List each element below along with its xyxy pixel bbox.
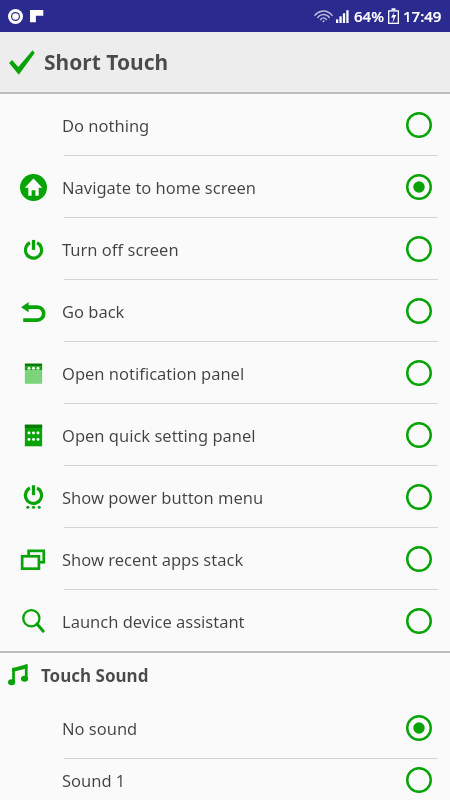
button[interactable]: Show power button menu [0, 466, 450, 527]
staticText: Show recent apps stack [62, 548, 406, 570]
button[interactable]: Open quick setting panel [0, 404, 450, 465]
button[interactable]: No sound [0, 697, 450, 758]
staticText: Open notification panel [62, 362, 406, 384]
staticText: Turn off screen [62, 238, 406, 260]
other: App status [8, 9, 23, 24]
staticText: Go back [62, 300, 406, 322]
staticText: Navigate to home screen [62, 176, 406, 198]
button[interactable]: Navigate to home screen [0, 156, 450, 217]
button[interactable]: Show recent apps stack [0, 528, 450, 589]
button[interactable]: Turn off screen [0, 218, 450, 279]
button[interactable]: Do nothing [0, 94, 450, 155]
staticText: 17:49 [403, 6, 442, 26]
staticText: Do nothing [62, 114, 406, 136]
staticText: Touch Sound [41, 664, 149, 687]
staticText: Short Touch [44, 48, 169, 77]
staticText: Open quick setting panel [62, 424, 406, 446]
button[interactable]: Sound 1 [0, 759, 450, 800]
button[interactable]: Open notification panel [0, 342, 450, 403]
staticText: Show power button menu [62, 486, 406, 508]
staticText: 64% [354, 6, 384, 26]
button[interactable]: Go back [0, 280, 450, 341]
staticText: Launch device assistant [62, 610, 406, 632]
staticText: Sound 1 [62, 769, 406, 791]
staticText: No sound [62, 717, 406, 739]
button[interactable]: Launch device assistant [0, 590, 450, 651]
